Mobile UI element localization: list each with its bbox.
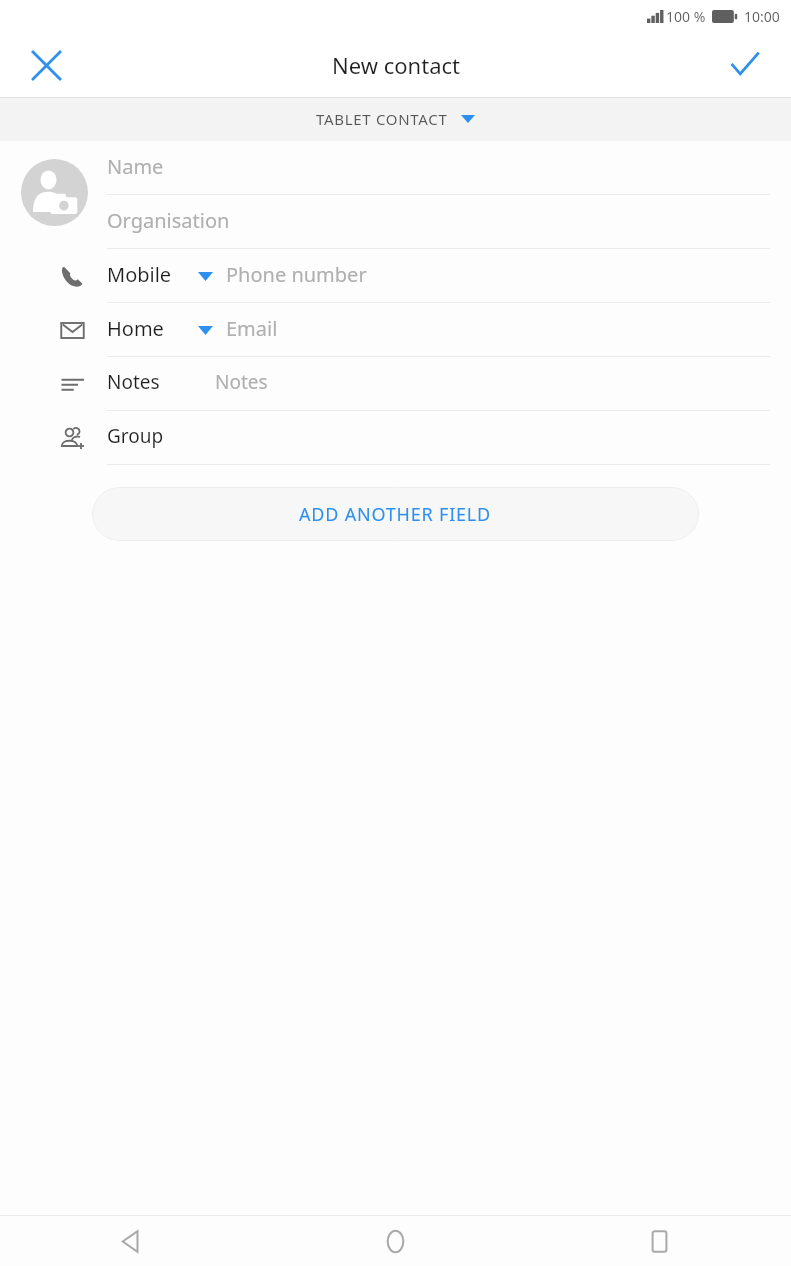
staticText: Notes	[215, 369, 268, 395]
other: Notes	[52, 364, 92, 404]
button[interactable]: Save	[717, 37, 773, 93]
staticText: Organisation	[107, 207, 230, 234]
button[interactable]: Add photo	[21, 159, 88, 226]
button[interactable]: Home	[263, 1216, 527, 1266]
button[interactable]: Home type	[188, 313, 222, 347]
staticText: Mobile	[107, 261, 172, 288]
button[interactable]: Close	[18, 37, 74, 93]
button[interactable]: Name	[0, 141, 791, 195]
button[interactable]: Group	[0, 411, 791, 465]
staticText: Phone number	[226, 261, 367, 288]
staticText: Group	[107, 423, 164, 449]
button[interactable]: Notes	[0, 357, 791, 411]
other: Email	[52, 310, 92, 350]
button[interactable]: Back	[0, 1216, 263, 1266]
button[interactable]: Phone	[0, 249, 791, 303]
staticText: Home	[107, 315, 164, 342]
button[interactable]: Organisation	[0, 195, 791, 249]
other: Group	[52, 418, 92, 458]
button[interactable]: Email	[0, 303, 791, 357]
staticText: Email	[226, 315, 278, 342]
staticText: New contact	[332, 50, 460, 80]
staticText: 10:00	[744, 7, 780, 26]
button[interactable]: ADD ANOTHER FIELD	[92, 487, 699, 541]
staticText: Notes	[107, 369, 160, 395]
staticText: ADD ANOTHER FIELD	[299, 502, 492, 527]
button[interactable]: TABLET CONTACT	[0, 97, 791, 141]
button[interactable]: Mobile type	[188, 259, 222, 293]
button[interactable]: Recents	[527, 1216, 791, 1266]
staticText: TABLET CONTACT	[316, 109, 448, 129]
staticText: Name	[107, 153, 164, 180]
staticText: 100 %	[666, 7, 706, 26]
other: Phone	[52, 256, 92, 296]
